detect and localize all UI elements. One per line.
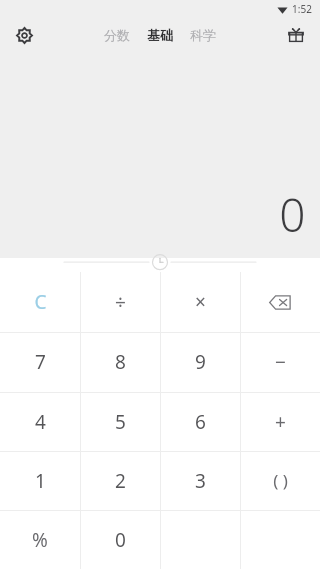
button[interactable]: 9 — [160, 332, 240, 392]
staticText: C — [34, 289, 47, 315]
staticText: 科学 — [190, 27, 216, 43]
staticText: + — [275, 409, 286, 435]
staticText: 1:52 — [292, 2, 312, 16]
staticText: − — [275, 349, 286, 375]
button[interactable]: + — [240, 392, 320, 451]
staticText: 0 — [279, 183, 306, 246]
staticText: 9 — [195, 349, 206, 375]
staticText: 基础 — [147, 27, 173, 43]
staticText: 5 — [115, 409, 126, 435]
button[interactable]: 1 — [0, 451, 80, 510]
staticText: 1 — [35, 468, 46, 494]
button[interactable]: 4 — [0, 392, 80, 451]
button[interactable]: ÷ — [80, 272, 160, 332]
button[interactable]: 2 — [80, 451, 160, 510]
button[interactable]: Clear — [0, 272, 80, 332]
staticText: 0 — [115, 527, 126, 553]
staticText: × — [195, 289, 206, 315]
button[interactable]: − — [240, 332, 320, 392]
button[interactable]: 7 — [0, 332, 80, 392]
button[interactable]: 分数 — [102, 23, 132, 47]
button[interactable]: 3 — [160, 451, 240, 510]
button[interactable]: 8 — [80, 332, 160, 392]
button[interactable]: 科学 — [188, 23, 218, 47]
button[interactable]: History — [0, 258, 320, 272]
button[interactable]: Settings — [8, 19, 40, 51]
staticText: 分数 — [104, 27, 130, 43]
button[interactable]: Backspace — [240, 272, 320, 332]
button[interactable]: 基础 — [145, 23, 175, 47]
staticText: 7 — [35, 349, 46, 375]
button[interactable] — [160, 510, 240, 569]
staticText: 8 — [115, 349, 126, 375]
staticText: % — [32, 527, 48, 553]
button[interactable]: Gift — [280, 19, 312, 51]
button[interactable]: 0 — [80, 510, 160, 569]
button[interactable]: % — [0, 510, 80, 569]
staticText: 2 — [115, 468, 126, 494]
button[interactable]: ( ) — [240, 451, 320, 510]
staticText: 3 — [195, 468, 206, 494]
button[interactable]: 6 — [160, 392, 240, 451]
staticText: ÷ — [115, 289, 126, 315]
button[interactable]: × — [160, 272, 240, 332]
button[interactable]: 5 — [80, 392, 160, 451]
button[interactable] — [240, 510, 320, 569]
staticText: 4 — [35, 409, 46, 435]
staticText: ( ) — [273, 469, 288, 492]
staticText: 6 — [195, 409, 206, 435]
